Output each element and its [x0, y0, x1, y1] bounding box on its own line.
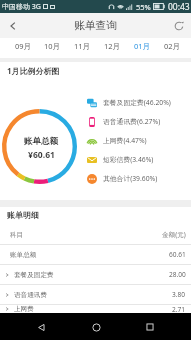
staticText: 其他合计(39.60%) — [103, 174, 158, 183]
button[interactable]: 套餐及固定费 — [0, 265, 191, 285]
button[interactable]: Back — [28, 314, 54, 340]
staticText: 11月 — [74, 41, 91, 51]
button[interactable]: 语音通讯费 — [0, 285, 191, 305]
staticText: 语音通讯费(6.27%) — [103, 117, 161, 126]
staticText: 短彩信费(3.46%) — [103, 155, 154, 164]
staticText: 语音通讯费 — [14, 291, 47, 299]
button[interactable]: 上网费 — [0, 305, 191, 313]
staticText: 28.00 — [169, 270, 186, 279]
staticText: 账单明细 — [7, 210, 39, 220]
button[interactable]: 11月 — [67, 38, 97, 54]
staticText: 2.71 — [172, 305, 186, 313]
button[interactable]: 科目 — [0, 225, 191, 245]
staticText: 3.80 — [172, 290, 186, 299]
staticText: 09月 — [15, 41, 32, 51]
staticText: 套餐及固定费(46.20%) — [103, 98, 171, 107]
staticText: 01月 — [134, 41, 151, 51]
staticText: 上网费(4.47%) — [103, 136, 147, 145]
staticText: 中国移动 3G — [2, 2, 41, 12]
staticText: 10月 — [44, 41, 61, 51]
staticText: ¥60.61 — [28, 149, 55, 161]
staticText: 账单总额 — [24, 136, 59, 147]
button[interactable]: Recents — [137, 314, 163, 340]
staticText: 套餐及固定费 — [14, 271, 54, 279]
button[interactable]: Home — [83, 314, 109, 340]
staticText: 60.61 — [169, 250, 186, 259]
button[interactable]: 01月 — [127, 38, 157, 54]
button[interactable]: 12月 — [97, 38, 127, 54]
button[interactable]: Refresh — [166, 13, 191, 38]
staticText: 12月 — [104, 41, 121, 51]
button[interactable]: 02月 — [157, 38, 187, 54]
button[interactable]: Back — [0, 13, 25, 38]
staticText: 金额(元) — [162, 230, 186, 239]
button[interactable]: 10月 — [38, 38, 67, 54]
staticText: 账单查询 — [74, 19, 118, 33]
staticText: 账单总额 — [10, 251, 37, 259]
staticText: 55% — [136, 2, 151, 12]
staticText: 1月比例分析图 — [7, 65, 60, 76]
button[interactable]: 09月 — [9, 38, 38, 54]
staticText: 02月 — [164, 41, 181, 51]
staticText: 00:43 — [168, 1, 190, 13]
staticText: 科目 — [10, 231, 24, 239]
button[interactable]: 账单总额 — [0, 245, 191, 265]
staticText: 上网费 — [14, 305, 34, 313]
